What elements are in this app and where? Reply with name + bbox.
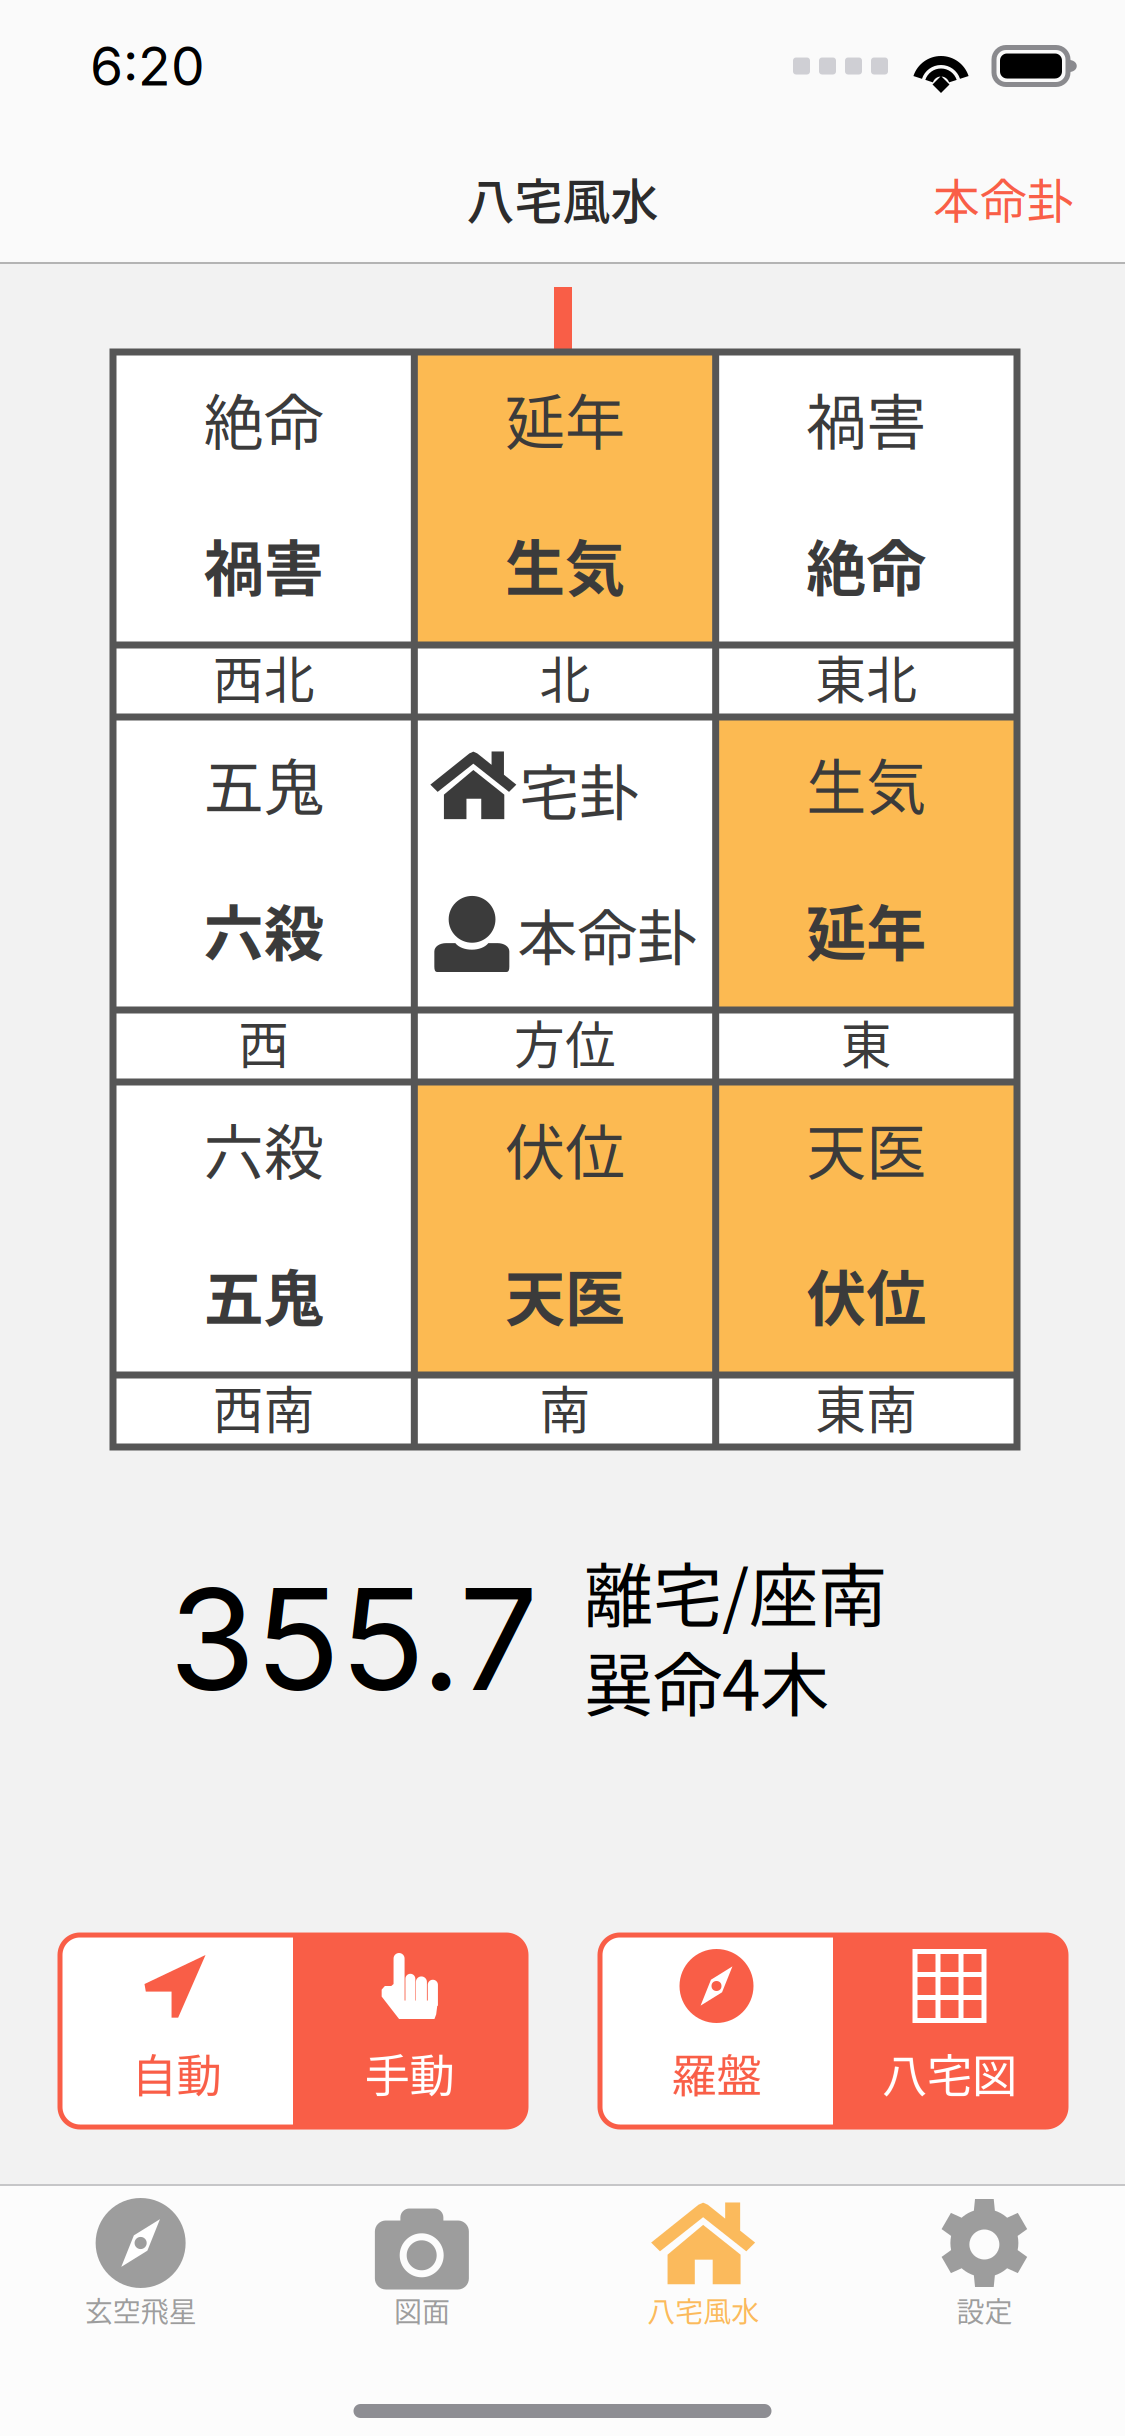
staticText: 羅盤	[671, 2040, 761, 2106]
button[interactable]: 自動	[60, 1935, 526, 2127]
staticText: 巽命4木	[584, 1630, 829, 1731]
button[interactable]: 八宅風水	[562, 2192, 844, 2352]
staticText: 六殺	[204, 886, 324, 973]
staticText: 355.7	[169, 1554, 538, 1724]
staticText: 離宅/座南	[584, 1541, 887, 1641]
staticText: 八宅風水	[647, 2290, 759, 2330]
staticText: 禍害	[806, 375, 926, 462]
staticText: 八宅図	[882, 2040, 1017, 2106]
staticText: 西北	[213, 640, 315, 714]
staticText: 東	[841, 1005, 892, 1079]
staticText: 方位	[514, 1005, 616, 1079]
staticText: 六殺	[204, 1105, 324, 1192]
staticText: 北	[539, 640, 590, 714]
staticText: 自動	[131, 2040, 221, 2106]
staticText: 絶命	[204, 375, 324, 462]
staticText: 本命卦	[517, 891, 697, 977]
staticText: 禍害	[204, 521, 324, 608]
button[interactable]: 図面	[281, 2192, 562, 2352]
staticText: 図面	[394, 2290, 450, 2330]
button[interactable]: 羅盤	[600, 1935, 1066, 2127]
button[interactable]: 設定	[844, 2192, 1125, 2352]
staticText: 延年	[505, 375, 625, 462]
staticText: 絶命	[806, 521, 926, 608]
staticText: 生気	[806, 740, 926, 827]
staticText: 東北	[815, 640, 917, 714]
staticText: 天医	[806, 1105, 926, 1192]
staticText: 生気	[505, 521, 625, 608]
staticText: 6:20	[90, 34, 205, 98]
staticText: 天医	[505, 1251, 625, 1338]
staticText: 設定	[956, 2290, 1012, 2330]
staticText: 五鬼	[204, 740, 324, 827]
staticText: 東南	[815, 1370, 917, 1444]
button[interactable]: 玄空飛星	[0, 2192, 281, 2352]
staticText: 伏位	[806, 1251, 926, 1338]
staticText: 西	[238, 1005, 289, 1079]
staticText: 手動	[364, 2040, 454, 2106]
staticText: 南	[539, 1370, 590, 1444]
staticText: 五鬼	[204, 1251, 324, 1338]
staticText: 本命卦	[933, 164, 1074, 232]
staticText: 延年	[806, 886, 926, 973]
staticText: 宅卦	[519, 746, 639, 832]
staticText: 伏位	[505, 1105, 625, 1192]
button[interactable]: 本命卦	[907, 144, 1100, 252]
staticText: 八宅風水	[466, 163, 658, 233]
staticText: 玄空飛星	[85, 2290, 197, 2330]
staticText: 西南	[213, 1370, 315, 1444]
